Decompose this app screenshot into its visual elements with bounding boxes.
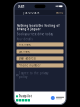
staticText: 9:41 — [17, 4, 24, 9]
staticText: Nothing beats the feeling of driving a J… — [16, 24, 59, 31]
button[interactable]: Email address — [16, 56, 63, 61]
staticText: Your details — [16, 37, 32, 41]
button[interactable]: J A G U A R — [23, 11, 39, 14]
staticText: First name — [18, 43, 31, 46]
button[interactable]: First name — [16, 42, 63, 47]
staticText: Last name — [18, 50, 30, 53]
button[interactable]: Menu — [55, 11, 63, 14]
staticText: Email address — [18, 57, 35, 60]
staticText: Trustpilot — [19, 94, 32, 98]
staticText: J A G U A R — [23, 11, 39, 14]
staticText: Menu — [55, 11, 63, 14]
staticText: Book your test drive today — [16, 32, 52, 36]
staticText: Phone number — [18, 64, 40, 67]
staticText: I agree to the privacy policy — [19, 72, 48, 79]
button[interactable]: Last name — [16, 49, 63, 54]
button[interactable]: Phone number — [16, 63, 63, 68]
